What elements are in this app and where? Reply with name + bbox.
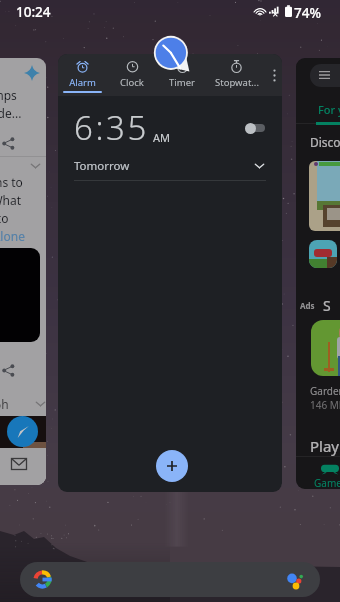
staticText: Fans to — [0, 174, 23, 190]
button[interactable]: Search — [20, 562, 320, 597]
staticText: S — [323, 296, 331, 315]
button[interactable]: Alarm — [58, 54, 282, 492]
staticText: For y — [318, 102, 340, 117]
button[interactable]: More options — [266, 54, 282, 96]
button[interactable]: Clock — [107, 54, 157, 96]
button[interactable]: Add alarm — [156, 450, 188, 482]
staticText: rsAlone — [0, 228, 25, 244]
staticText: nt to — [0, 210, 9, 226]
staticText: Games — [314, 476, 340, 489]
staticText: Stopwat... — [215, 76, 259, 89]
staticText: Timer — [169, 76, 195, 89]
staticText: Ads — [300, 300, 315, 311]
staticText: Play v — [310, 436, 340, 456]
button[interactable]: jumps — [0, 58, 46, 485]
button[interactable]: Timer — [157, 54, 207, 96]
staticText: 10:24 — [16, 3, 51, 21]
button[interactable]: Alarm — [58, 54, 107, 96]
staticText: 74% — [294, 4, 321, 22]
staticText: jumps — [0, 87, 17, 103]
staticText: 6:35 — [74, 105, 149, 150]
staticText: Disco — [310, 134, 340, 150]
staticText: 146 MB — [310, 398, 340, 412]
staticText: Gardens — [310, 384, 340, 398]
staticText: Alarm — [69, 76, 96, 89]
staticText: eside... — [0, 105, 22, 121]
button[interactable]: For y — [296, 58, 340, 489]
staticText: Clock — [120, 76, 144, 89]
staticText: l. What — [0, 192, 22, 208]
staticText: · 6h — [0, 396, 9, 412]
button[interactable]: Alarm toggle — [245, 121, 265, 135]
button[interactable]: Compose — [7, 416, 38, 447]
staticText: AM — [153, 130, 171, 145]
button[interactable]: Stopwat... — [207, 54, 266, 96]
staticText: Tomorrow — [74, 158, 130, 174]
